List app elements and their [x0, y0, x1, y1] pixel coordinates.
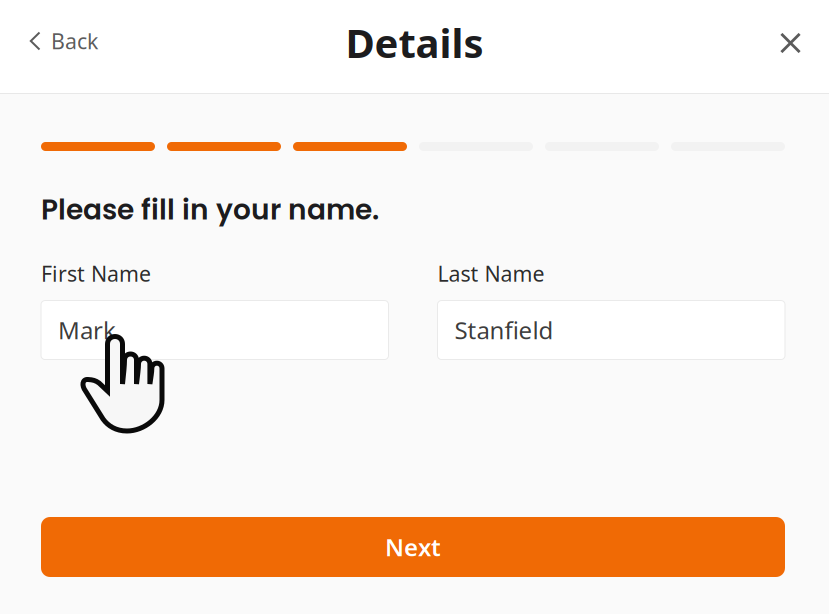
- button[interactable]: Back: [0, 21, 127, 73]
- staticText: Next: [385, 531, 441, 563]
- staticText: Please fill in your name.: [41, 190, 379, 229]
- button[interactable]: Stanfield: [437, 300, 785, 359]
- staticText: Last Name: [437, 259, 544, 287]
- staticText: Mark: [58, 314, 116, 346]
- button[interactable]: Mark: [41, 300, 388, 359]
- staticText: Details: [345, 16, 483, 69]
- button[interactable]: Next: [41, 517, 785, 577]
- staticText: First Name: [41, 259, 151, 287]
- staticText: Back: [51, 27, 98, 55]
- button[interactable]: Close: [752, 24, 829, 69]
- staticText: Stanfield: [454, 314, 553, 346]
